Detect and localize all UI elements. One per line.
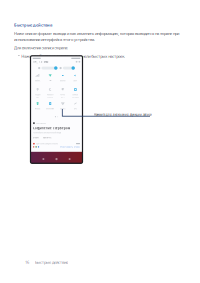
staticText: ПОВТОРИТЬ bbox=[42, 137, 51, 139]
staticText: Wi-Fi bbox=[49, 80, 51, 82]
staticText: Звонок bbox=[60, 80, 66, 82]
staticText: Мобил. bbox=[35, 80, 40, 82]
staticText: Синхро bbox=[72, 94, 78, 96]
staticText: экрана bbox=[47, 96, 53, 98]
staticText: 16 bbox=[25, 259, 29, 265]
staticText: Нажмите для включения функции записи bbox=[94, 113, 152, 116]
staticText: Точка bbox=[60, 94, 65, 96]
staticText: Идёт запись видео с экрана bbox=[36, 143, 58, 145]
staticText: ПРИОСТАНОВИТЬ bbox=[60, 146, 73, 148]
staticText: Так и не было связи, но попробуй ещё bbox=[33, 132, 61, 134]
staticText: использовании интерфейса этого устройств… bbox=[14, 37, 95, 42]
staticText: низация bbox=[72, 96, 79, 98]
staticText: GPS bbox=[74, 108, 77, 110]
staticText: ОТМЕНА bbox=[33, 137, 39, 139]
staticText: Экономия bbox=[46, 108, 54, 110]
staticText: ОТМЕНА bbox=[74, 146, 80, 148]
staticText: Для включения записи экрана: bbox=[14, 45, 68, 50]
staticText: Соединение с сервером bbox=[33, 126, 70, 130]
staticText: Фонарь bbox=[35, 108, 41, 110]
staticText: Поворот bbox=[47, 94, 54, 96]
staticText: Нажмите Быстрые действия на панели быстр… bbox=[21, 53, 125, 59]
staticText: Быстрые действия bbox=[35, 259, 68, 265]
staticText: ные bbox=[36, 96, 39, 98]
staticText: Быстрые действия bbox=[14, 22, 52, 28]
staticText: дост. bbox=[61, 96, 65, 98]
staticText: Приложение bbox=[36, 122, 46, 124]
staticText: Ниже описан формат вывода и как изменить… bbox=[14, 31, 179, 36]
staticText: Пн, 13 мая bbox=[33, 60, 49, 63]
staticText: Звук bbox=[73, 80, 77, 82]
staticText: Геодан bbox=[35, 94, 41, 96]
staticText: Запись bbox=[60, 108, 66, 110]
